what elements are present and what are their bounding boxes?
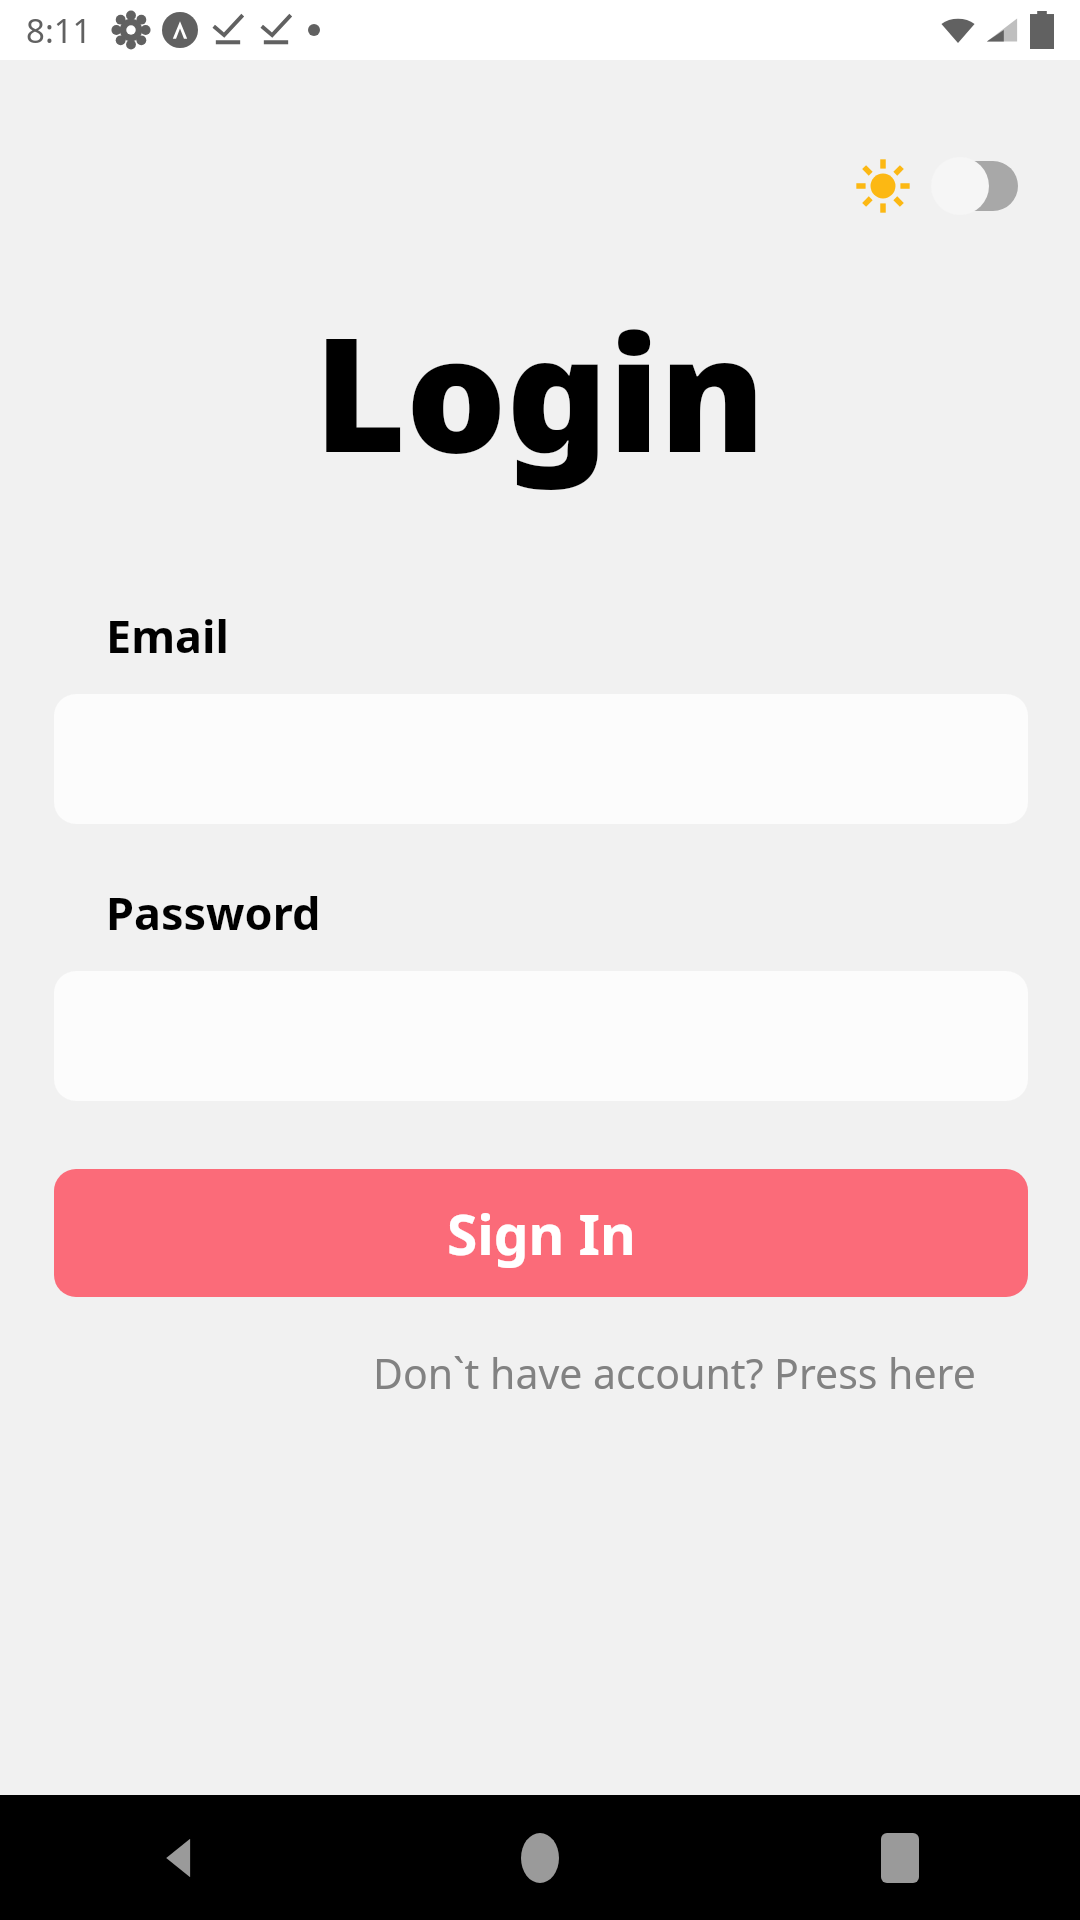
other: Toggle light theme: [854, 157, 912, 215]
button[interactable]: Back: [0, 1795, 360, 1920]
button[interactable]: Dark mode switch: [934, 157, 1018, 215]
button[interactable]: Don`t have account? Press here: [373, 1345, 976, 1401]
staticText: Login: [314, 283, 766, 498]
button[interactable]: Recent apps: [720, 1795, 1080, 1920]
staticText: Password: [106, 882, 321, 943]
staticText: Don`t have account? Press here: [373, 1345, 976, 1401]
button[interactable]: Sign In: [54, 1169, 1028, 1297]
staticText: Sign In: [447, 1196, 636, 1271]
staticText: Email: [106, 605, 229, 666]
button[interactable]: Home: [360, 1795, 720, 1920]
staticText: 8:11: [26, 8, 92, 53]
